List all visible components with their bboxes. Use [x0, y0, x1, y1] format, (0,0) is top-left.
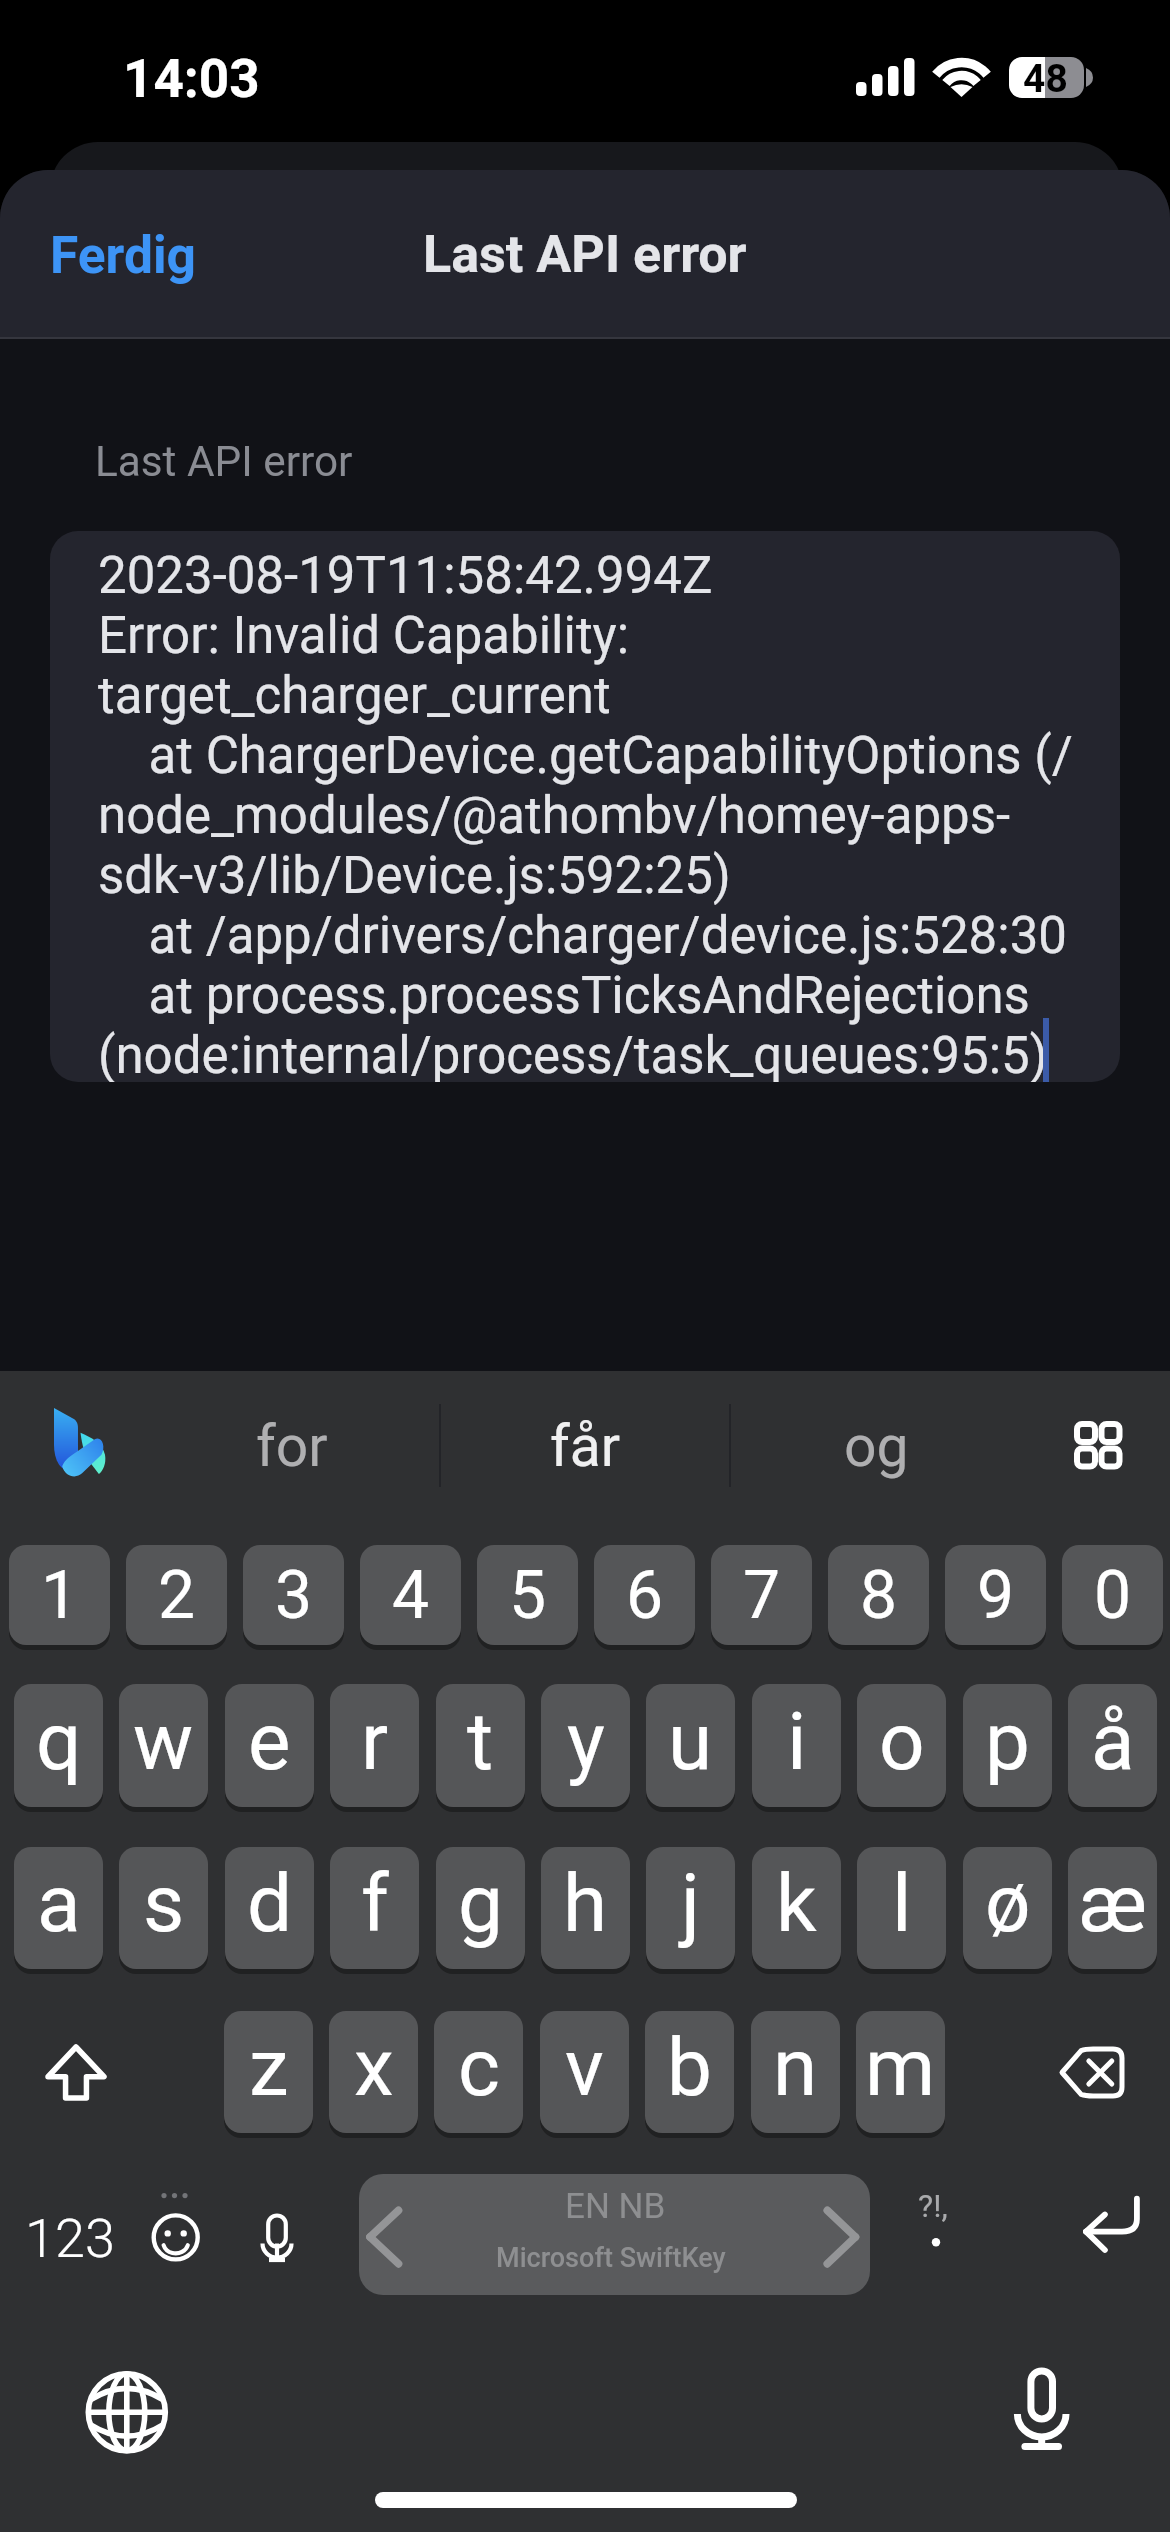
staticText: target_charger_current — [98, 666, 611, 726]
button[interactable]: i — [752, 1684, 841, 1807]
button[interactable]: a — [14, 1847, 103, 1969]
staticText: j — [681, 1857, 701, 1951]
button[interactable]: for — [196, 1371, 388, 1516]
staticText: får — [550, 1413, 621, 1480]
button[interactable]: Ferdig — [20, 207, 227, 303]
staticText: o — [879, 1695, 925, 1789]
staticText: z — [249, 2021, 289, 2115]
staticText: y — [567, 1695, 605, 1789]
button[interactable]: w — [119, 1684, 208, 1807]
button[interactable]: m — [856, 2011, 945, 2133]
button[interactable]: y — [541, 1684, 630, 1807]
staticText: Error: Invalid Capability: — [98, 606, 630, 666]
button[interactable]: d — [225, 1847, 314, 1969]
button[interactable]: n — [751, 2011, 840, 2133]
staticText: h — [563, 1857, 608, 1951]
button[interactable]: Emoji — [126, 2177, 226, 2299]
button[interactable]: Enter — [1020, 2177, 1150, 2299]
staticText: Ferdig — [50, 225, 197, 285]
button[interactable]: ?!, — [880, 2177, 1000, 2299]
button[interactable]: 1 — [9, 1545, 110, 1645]
button[interactable]: x — [329, 2011, 418, 2133]
button[interactable]: 9 — [945, 1545, 1046, 1645]
button[interactable]: Shift — [10, 2011, 140, 2133]
staticText: (node:internal/process/task_queues:95:5) — [98, 1026, 1048, 1082]
staticText: w — [133, 1695, 194, 1789]
button[interactable]: p — [963, 1684, 1052, 1807]
staticText: s — [143, 1857, 185, 1951]
staticText: n — [773, 2021, 818, 2115]
button[interactable]: 2 — [126, 1545, 227, 1645]
button[interactable]: Change language — [67, 2352, 187, 2472]
staticText: at ChargerDevice.getCapabilityOptions (/ — [98, 726, 1073, 786]
staticText: 1 — [41, 1557, 79, 1634]
staticText: i — [787, 1695, 807, 1789]
button[interactable]: 123 — [10, 2177, 130, 2299]
staticText: ?!, — [918, 2187, 948, 2225]
button[interactable]: o — [857, 1684, 946, 1807]
button[interactable]: f — [330, 1847, 419, 1969]
button[interactable]: 0 — [1062, 1545, 1163, 1645]
button[interactable]: 3 — [243, 1545, 344, 1645]
staticText: a — [37, 1857, 81, 1951]
button[interactable]: v — [540, 2011, 629, 2133]
button[interactable]: Voice input — [237, 2177, 317, 2299]
staticText: 0 — [1094, 1557, 1132, 1634]
staticText: 123 — [25, 2207, 115, 2270]
button[interactable]: h — [541, 1847, 630, 1969]
staticText: k — [776, 1857, 817, 1951]
button[interactable]: 5 — [477, 1545, 578, 1645]
button[interactable]: k — [752, 1847, 841, 1969]
staticText: u — [668, 1695, 713, 1789]
button[interactable]: 6 — [594, 1545, 695, 1645]
staticText: sdk-v3/lib/Device.js:592:25) — [98, 846, 731, 906]
staticText: 2 — [158, 1557, 196, 1634]
staticText: 7 — [743, 1557, 781, 1634]
staticText: f — [361, 1857, 389, 1951]
staticText: m — [865, 2021, 936, 2115]
staticText: 14:03 — [123, 48, 260, 110]
button[interactable]: 8 — [828, 1545, 929, 1645]
staticText: p — [985, 1695, 1030, 1789]
staticText: r — [361, 1695, 389, 1789]
staticText: æ — [1079, 1857, 1147, 1951]
staticText: 9 — [977, 1557, 1015, 1634]
staticText: 6 — [626, 1557, 664, 1634]
staticText: 3 — [275, 1557, 313, 1634]
button[interactable]: EN NB — [359, 2174, 870, 2295]
button[interactable]: æ — [1068, 1847, 1157, 1969]
staticText: v — [565, 2021, 604, 2115]
button[interactable]: z — [224, 2011, 313, 2133]
button[interactable]: c — [434, 2011, 523, 2133]
button[interactable]: l — [857, 1847, 946, 1969]
button[interactable]: j — [646, 1847, 735, 1969]
button[interactable]: q — [14, 1684, 103, 1807]
button[interactable]: Keyboard menu — [1050, 1396, 1150, 1496]
button[interactable]: b — [645, 2011, 734, 2133]
other: Bing — [54, 1408, 105, 1479]
button[interactable]: s — [119, 1847, 208, 1969]
button[interactable]: r — [330, 1684, 419, 1807]
staticText: d — [247, 1857, 293, 1951]
staticText: 8 — [860, 1557, 898, 1634]
button[interactable]: 2023-08-19T11:58:42.994Z — [50, 531, 1120, 1082]
button[interactable]: å — [1068, 1684, 1157, 1807]
button[interactable]: u — [646, 1684, 735, 1807]
staticText: 4 — [392, 1557, 430, 1634]
button[interactable]: og — [730, 1371, 1022, 1516]
button[interactable]: 4 — [360, 1545, 461, 1645]
staticText: 2023-08-19T11:58:42.994Z — [98, 546, 713, 606]
button[interactable]: får — [440, 1371, 730, 1516]
staticText: å — [1091, 1695, 1135, 1789]
button[interactable]: ø — [963, 1847, 1052, 1969]
staticText: c — [458, 2021, 500, 2115]
staticText: b — [667, 2021, 712, 2115]
button[interactable]: e — [225, 1684, 314, 1807]
staticText: Last API error — [423, 224, 747, 285]
button[interactable]: t — [436, 1684, 525, 1807]
staticText: Last API error — [95, 437, 353, 487]
button[interactable]: Backspace — [1030, 2011, 1155, 2133]
button[interactable]: 7 — [711, 1545, 812, 1645]
button[interactable]: g — [436, 1847, 525, 1969]
button[interactable]: Voice typing — [1000, 2352, 1100, 2472]
